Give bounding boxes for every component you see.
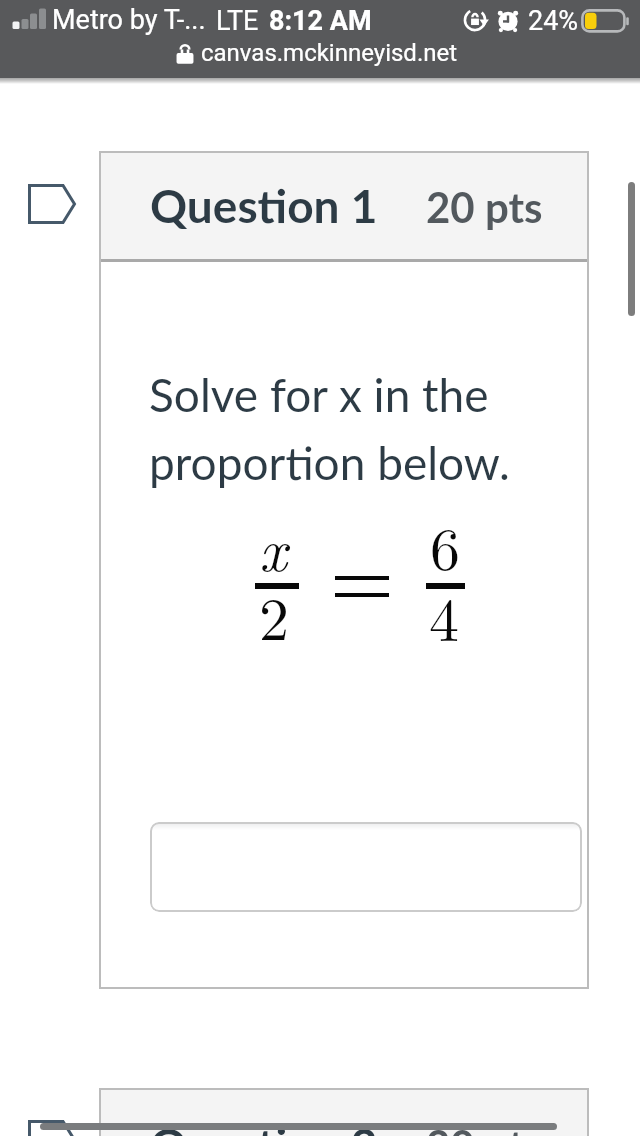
button[interactable]: Flag question 2 [28, 1120, 76, 1136]
button[interactable]: Flag question 1 [28, 184, 76, 224]
staticText: Question 1 [150, 178, 378, 233]
button[interactable]: Alarm set [496, 8, 520, 32]
staticText: x [259, 503, 287, 588]
other: Battery 24 percent [580, 7, 630, 31]
staticText: 20 pts [426, 1120, 543, 1136]
other: Signal strength [12, 8, 46, 29]
staticText: 20 pts [426, 182, 543, 232]
staticText: Question 2 [150, 1117, 378, 1136]
button[interactable]: Address bar canvas.mckinneyisd.net [168, 40, 443, 78]
staticText: 24% [528, 5, 579, 37]
staticText: Solve for x in the [149, 367, 489, 422]
staticText: 6 [430, 502, 460, 587]
staticText: 4 [429, 573, 459, 658]
button[interactable] [99, 151, 589, 989]
staticText: Metro by T-... [52, 4, 206, 36]
staticText: proportion below. [149, 435, 510, 490]
button[interactable]: Answer field [150, 822, 582, 912]
staticText: LTE [216, 5, 259, 37]
staticText: 2 [259, 572, 289, 657]
staticText: canvas.mckinneyisd.net [201, 39, 458, 67]
button[interactable] [99, 1088, 589, 1136]
staticText: 8:12 AM [269, 5, 372, 37]
button[interactable]: Rotation lock [463, 8, 487, 32]
